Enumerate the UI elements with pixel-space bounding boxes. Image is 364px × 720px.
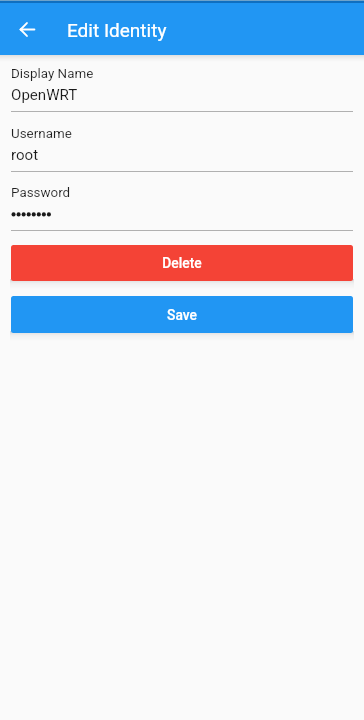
button[interactable]: Password: [0, 176, 364, 235]
staticText: Username: [11, 126, 72, 142]
staticText: root: [11, 146, 39, 164]
button[interactable]: Delete: [11, 245, 353, 281]
button[interactable]: Back: [9, 11, 45, 47]
staticText: Display Name: [11, 66, 94, 82]
staticText: Edit Identity: [67, 19, 167, 41]
button[interactable]: Display Name: [0, 57, 364, 116]
button[interactable]: Username: [0, 117, 364, 176]
staticText: OpenWRT: [11, 86, 78, 104]
button[interactable]: Save: [11, 296, 353, 333]
staticText: Password: [11, 185, 71, 201]
staticText: Delete: [162, 255, 202, 271]
staticText: Save: [167, 307, 197, 323]
